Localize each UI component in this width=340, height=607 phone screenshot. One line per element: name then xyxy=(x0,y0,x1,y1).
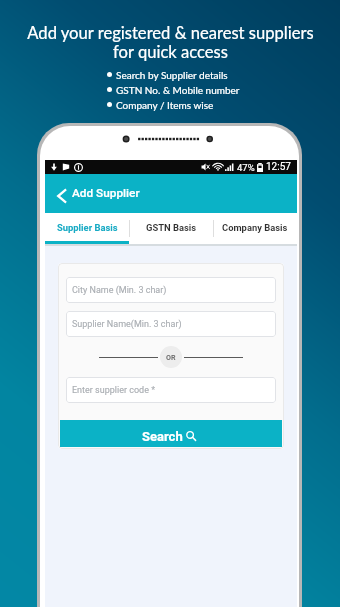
staticText: Supplier Name(Min. 3 char) xyxy=(72,319,182,330)
staticText: GSTN Basis xyxy=(146,222,197,233)
staticText: 47% xyxy=(237,162,255,173)
staticText: Search xyxy=(142,429,183,444)
staticText: 12:57 xyxy=(266,161,291,173)
staticText: Search by Supplier details xyxy=(116,69,228,81)
staticText: Supplier Basis xyxy=(57,222,118,233)
staticText: City Name (Min. 3 char) xyxy=(72,285,167,296)
staticText: Company / Items wise xyxy=(116,99,214,111)
button[interactable]: Company Basis xyxy=(213,213,297,244)
staticText: Company Basis xyxy=(222,222,288,233)
button[interactable]: Enter supplier code * xyxy=(66,377,276,403)
button[interactable]: Back xyxy=(51,184,71,204)
button[interactable]: City Name (Min. 3 char) xyxy=(66,277,276,303)
staticText: OR xyxy=(166,353,176,361)
staticText: Add Supplier xyxy=(72,186,140,200)
button[interactable]: Supplier Name(Min. 3 char) xyxy=(66,311,276,337)
staticText: GSTN No. & Mobile number xyxy=(116,84,240,96)
staticText: Enter supplier code * xyxy=(72,385,156,396)
button[interactable]: Supplier Basis xyxy=(45,213,129,244)
button[interactable]: Search xyxy=(60,420,282,447)
staticText: Add your registered & nearest suppliers … xyxy=(27,23,314,61)
button[interactable]: GSTN Basis xyxy=(129,213,213,244)
